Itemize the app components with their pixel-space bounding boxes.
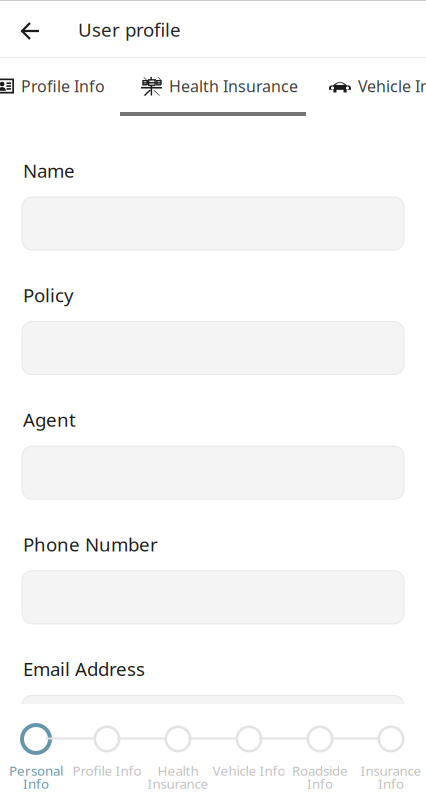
staticText: Health: [157, 762, 198, 779]
staticText: Health Insurance: [169, 75, 298, 97]
button[interactable]: Health Insurance: [115, 71, 313, 101]
staticText: Insurance: [360, 762, 421, 779]
button[interactable]: Personal: [0, 723, 71, 795]
staticText: Info: [307, 775, 333, 792]
staticText: Roadside: [292, 762, 348, 779]
button[interactable]: Profile Info: [0, 71, 115, 101]
staticText: Profile Info: [72, 762, 141, 779]
staticText: Info: [378, 775, 404, 792]
staticText: Info: [23, 775, 49, 792]
button[interactable]: Vehicle Info: [213, 723, 284, 795]
staticText: Name: [23, 158, 75, 183]
staticText: Email Address: [23, 656, 145, 681]
staticText: Policy: [23, 283, 74, 307]
button[interactable]: Vehicle Info: [313, 71, 426, 101]
staticText: User profile: [78, 17, 181, 42]
button[interactable]: Email Address: [22, 695, 404, 748]
staticText: Agent: [23, 407, 76, 432]
staticText: Profile Info: [21, 75, 105, 97]
button[interactable]: Profile Info: [71, 723, 142, 795]
button[interactable]: Health: [142, 723, 213, 795]
staticText: Phone Number: [23, 532, 158, 557]
staticText: Vehicle Info: [212, 762, 285, 779]
button[interactable]: Back: [0, 0, 60, 58]
staticText: Personal: [9, 762, 63, 779]
button[interactable]: Roadside: [284, 723, 355, 795]
staticText: Vehicle Info: [358, 75, 426, 97]
staticText: Insurance: [147, 775, 208, 792]
button[interactable]: Insurance: [355, 723, 426, 795]
